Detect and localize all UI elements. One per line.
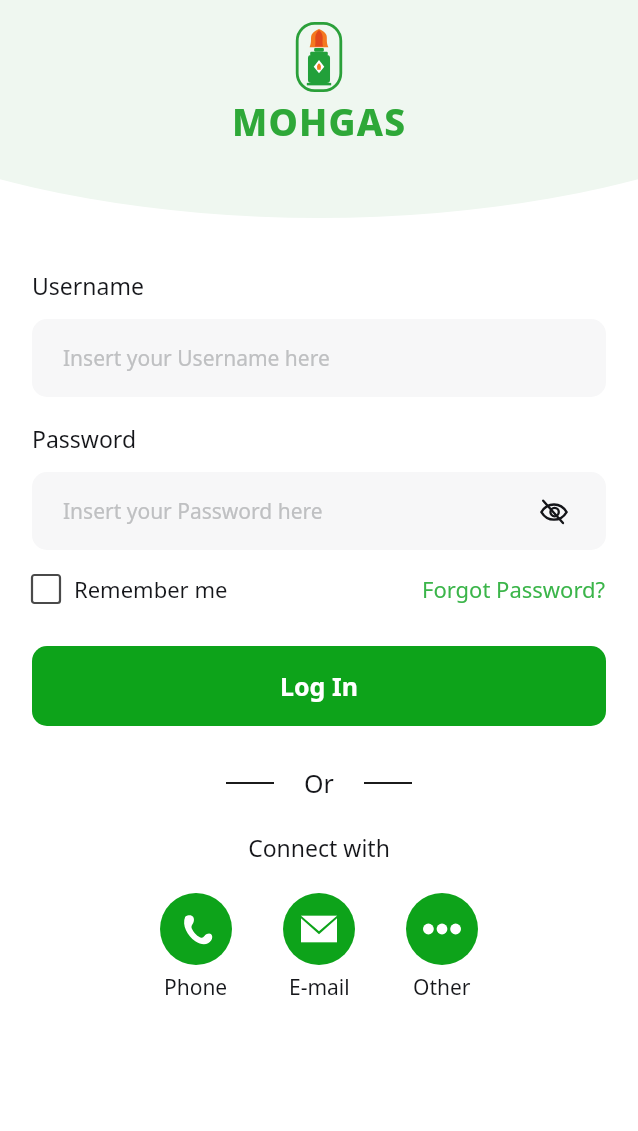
- button[interactable]: Insert your Username here: [32, 319, 606, 397]
- button[interactable]: Forgot Password?: [422, 574, 606, 604]
- staticText: Password: [32, 423, 137, 454]
- button[interactable]: E-mail: [283, 893, 355, 1002]
- button[interactable]: Insert your Password here: [32, 472, 606, 550]
- staticText: MOHGAS: [232, 96, 407, 146]
- button[interactable]: Log In: [32, 646, 606, 726]
- staticText: Phone: [164, 973, 228, 1002]
- staticText: Other: [413, 973, 471, 1002]
- staticText: Or: [304, 766, 334, 800]
- button[interactable]: Show password: [533, 490, 575, 532]
- staticText: Insert your Password here: [63, 497, 323, 526]
- button[interactable]: Other: [406, 893, 478, 1002]
- staticText: Username: [32, 270, 144, 301]
- staticText: Forgot Password?: [422, 574, 606, 604]
- staticText: Connect with: [32, 832, 606, 863]
- button[interactable]: Remember me: [32, 574, 228, 604]
- staticText: E-mail: [289, 973, 350, 1002]
- staticText: Remember me: [74, 574, 228, 604]
- staticText: Insert your Username here: [63, 344, 330, 373]
- button[interactable]: Phone: [160, 893, 232, 1002]
- staticText: Log In: [280, 669, 358, 703]
